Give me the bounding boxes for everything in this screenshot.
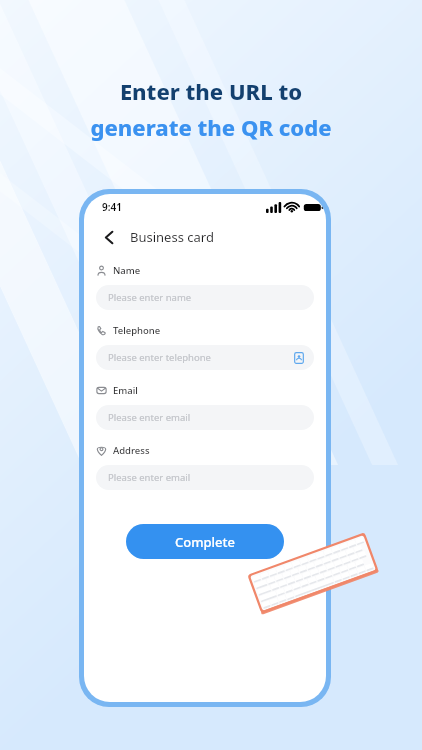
button[interactable]: Back [96, 224, 122, 250]
staticText: Address [113, 444, 150, 457]
staticText: Enter the URL to [0, 76, 422, 106]
button[interactable]: Choose contact [292, 351, 305, 364]
staticText: Name [113, 264, 141, 277]
staticText: Please enter name [108, 291, 192, 304]
button[interactable]: Please enter name [96, 285, 314, 310]
staticText: Business card [130, 228, 214, 246]
staticText: 9:41 [102, 200, 122, 214]
staticText: Email [113, 384, 138, 397]
button[interactable]: Please enter telephone [96, 345, 314, 370]
staticText: Please enter email [108, 411, 191, 424]
staticText: Complete [175, 533, 235, 551]
button[interactable]: Please enter email [96, 405, 314, 430]
staticText: Please enter telephone [108, 351, 211, 364]
staticText: Telephone [113, 324, 161, 337]
staticText: generate the QR code [0, 112, 422, 142]
button[interactable]: Complete [126, 524, 284, 559]
staticText: Please enter email [108, 471, 191, 484]
button[interactable]: Please enter email [96, 465, 314, 490]
